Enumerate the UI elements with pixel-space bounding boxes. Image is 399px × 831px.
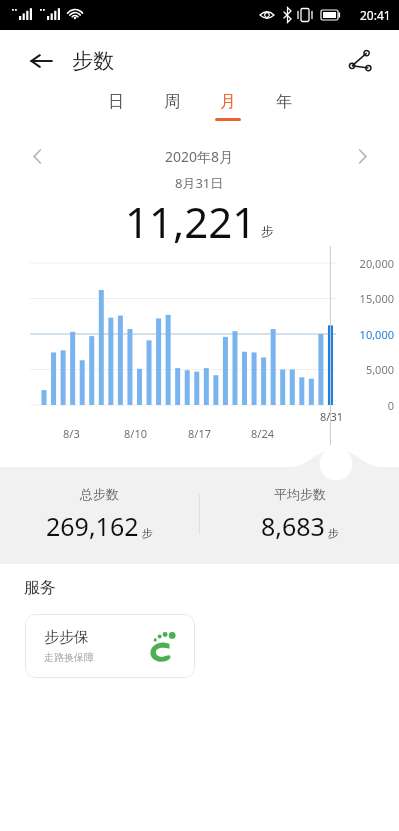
staticText: 月: [220, 92, 236, 112]
staticText: 8/17: [188, 426, 211, 441]
staticText: 步: [328, 526, 339, 540]
staticText: 步步保: [44, 628, 89, 647]
staticText: 2020年8月: [165, 147, 234, 166]
staticText: 周: [164, 92, 180, 112]
staticText: 269,162: [46, 509, 139, 543]
staticText: 8月31日: [175, 174, 224, 192]
staticText: 8/24: [251, 426, 274, 441]
button[interactable]: Previous month: [22, 141, 52, 171]
staticText: 8,683: [261, 509, 325, 543]
staticText: 20:41: [360, 7, 391, 23]
staticText: 平均步数: [274, 486, 326, 502]
staticText: 10,000: [338, 327, 394, 342]
staticText: 总步数: [80, 486, 119, 502]
staticText: 日: [108, 92, 124, 112]
button[interactable]: Next month: [347, 141, 377, 171]
button[interactable]: Share: [341, 42, 379, 80]
staticText: 步数: [72, 48, 114, 74]
staticText: 8/3: [63, 426, 80, 441]
staticText: 15,000: [338, 291, 394, 306]
staticText: 0: [338, 398, 394, 413]
staticText: 年: [276, 92, 292, 112]
staticText: 步: [261, 223, 274, 239]
staticText: 8/31: [320, 409, 343, 424]
staticText: 5,000: [338, 362, 394, 377]
button[interactable]: 年: [256, 92, 312, 136]
staticText: 走路换保障: [44, 651, 94, 664]
staticText: 步: [142, 526, 153, 540]
button[interactable]: 月: [200, 92, 256, 136]
button[interactable]: 步步保: [25, 614, 195, 678]
staticText: 服务: [24, 578, 56, 598]
button[interactable]: 日: [88, 92, 144, 136]
button[interactable]: Back: [22, 42, 60, 80]
staticText: 11,221: [125, 193, 257, 246]
staticText: 20,000: [338, 256, 394, 271]
staticText: 8/10: [124, 426, 147, 441]
button[interactable]: 周: [144, 92, 200, 136]
